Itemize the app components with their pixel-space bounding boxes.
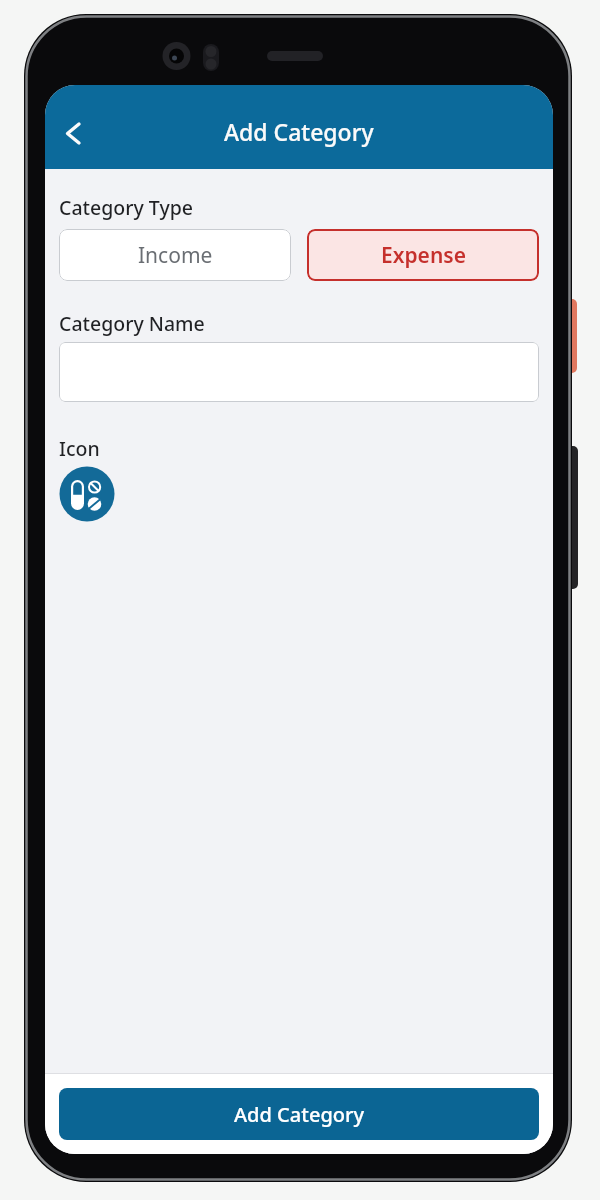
button[interactable] — [59, 466, 115, 522]
staticText: Category Name — [59, 310, 205, 337]
staticText: Expense — [381, 241, 466, 270]
staticText: Icon — [59, 435, 100, 462]
button[interactable]: Income — [59, 229, 291, 281]
button[interactable]: Add Category — [59, 1088, 539, 1140]
button[interactable] — [61, 120, 87, 146]
staticText: Add Category — [234, 1101, 365, 1128]
staticText: Income — [138, 241, 213, 270]
staticText: Add Category — [224, 116, 374, 147]
button[interactable]: Expense — [307, 229, 539, 281]
button[interactable] — [59, 342, 539, 402]
staticText: Category Type — [59, 194, 193, 221]
